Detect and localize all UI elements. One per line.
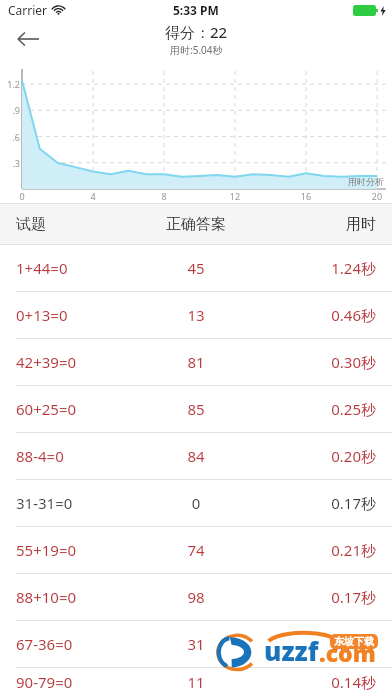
staticText: 81 [136, 352, 256, 372]
staticText: 45 [136, 258, 256, 278]
staticText: 0 [14, 190, 30, 202]
staticText: 20 [369, 190, 385, 202]
staticText: .com [319, 637, 376, 668]
staticText: 0.14秒 [256, 672, 376, 692]
staticText: 84 [136, 446, 256, 466]
staticText: 5:33 PM [173, 2, 219, 18]
staticText: uzzf [264, 633, 319, 668]
button[interactable]: 60+25=0 [0, 386, 392, 432]
staticText: 74 [136, 540, 256, 560]
staticText: 0+13=0 [16, 305, 136, 325]
staticText: 用时分析 [348, 176, 384, 187]
staticText: 98 [136, 587, 256, 607]
staticText: 60+25=0 [16, 399, 136, 419]
staticText: 8 [156, 190, 172, 202]
staticText: 东坡下载 [334, 635, 374, 648]
staticText: .3 [0, 157, 20, 169]
button[interactable]: 55+19=0 [0, 527, 392, 573]
staticText: 1.24秒 [256, 258, 376, 278]
staticText: .9 [0, 104, 20, 116]
button[interactable]: 90-79=0 [0, 668, 392, 696]
staticText: 31-31=0 [16, 493, 136, 513]
staticText: 55+19=0 [16, 540, 136, 560]
staticText: 用时 [256, 215, 376, 234]
button[interactable]: 88+10=0 [0, 574, 392, 620]
staticText: 16 [298, 190, 314, 202]
staticText: 88-4=0 [16, 446, 136, 466]
staticText: 0.21秒 [256, 540, 376, 560]
staticText: 11 [136, 672, 256, 692]
staticText: 4 [85, 190, 101, 202]
button[interactable]: 88-4=0 [0, 433, 392, 479]
staticText: 得分：22 [165, 22, 228, 42]
staticText: 0.17秒 [256, 587, 376, 607]
staticText: 42+39=0 [16, 352, 136, 372]
staticText: 0.25秒 [256, 399, 376, 419]
staticText: 0.20秒 [256, 446, 376, 466]
button[interactable]: 42+39=0 [0, 339, 392, 385]
staticText: 85 [136, 399, 256, 419]
staticText: .6 [0, 131, 20, 143]
staticText: 试题 [16, 215, 136, 234]
staticText: 31 [136, 634, 256, 654]
staticText: Carrier [8, 2, 48, 18]
staticText: 正确答案 [136, 215, 256, 234]
button[interactable]: 31-31=0 [0, 480, 392, 526]
staticText: 67-36=0 [16, 634, 136, 654]
button[interactable]: 67-36=0 [0, 621, 392, 667]
staticText: 用时:5.04秒 [170, 43, 223, 57]
staticText: 0.17秒 [256, 493, 376, 513]
button[interactable]: 0+13=0 [0, 292, 392, 338]
staticText: 0.46秒 [256, 305, 376, 325]
staticText: 0.30秒 [256, 352, 376, 372]
staticText: 12 [227, 190, 243, 202]
staticText: 1+44=0 [16, 258, 136, 278]
staticText: 0 [136, 493, 256, 513]
staticText: 0.17秒 [256, 634, 376, 654]
staticText: 13 [136, 305, 256, 325]
staticText: 88+10=0 [16, 587, 136, 607]
staticText: 1.2 [0, 78, 20, 90]
button[interactable]: Back [8, 20, 48, 58]
button[interactable]: 1+44=0 [0, 245, 392, 291]
staticText: 90-79=0 [16, 672, 136, 692]
